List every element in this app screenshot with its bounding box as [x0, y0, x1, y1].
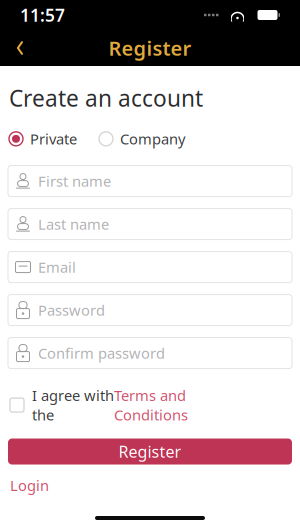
staticText: Terms and Conditions	[114, 386, 188, 425]
staticText: Password	[38, 300, 105, 320]
button[interactable]: I agree with the	[0, 381, 300, 430]
staticText: Register	[108, 35, 191, 61]
staticText: Company	[120, 129, 185, 149]
button[interactable]: Back	[0, 30, 40, 66]
staticText: Confirm password	[38, 343, 165, 363]
staticText: Email	[38, 257, 76, 277]
staticText: I agree with the	[32, 386, 114, 425]
button[interactable]: Register	[8, 438, 292, 464]
staticText: First name	[38, 171, 111, 191]
button[interactable]: Company	[99, 125, 185, 153]
staticText: Login	[10, 475, 49, 495]
staticText: Create an account	[9, 83, 203, 113]
button[interactable]: Private	[9, 125, 77, 153]
button[interactable]: Login	[0, 471, 59, 499]
staticText: Register	[118, 441, 181, 462]
staticText: Private	[30, 129, 77, 149]
staticText: 11:57	[20, 3, 65, 26]
staticText: Last name	[38, 214, 109, 234]
